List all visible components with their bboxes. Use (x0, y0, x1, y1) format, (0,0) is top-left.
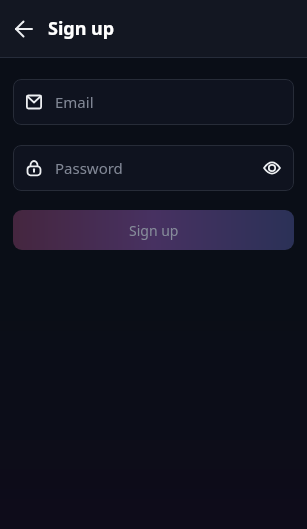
button[interactable] (0, 0, 48, 57)
staticText: Sign up (129, 221, 179, 240)
staticText: Sign up (48, 16, 115, 41)
staticText: Email (55, 92, 94, 112)
staticText: Password (55, 158, 123, 178)
button[interactable]: Email (13, 79, 294, 125)
button[interactable]: Sign up (13, 210, 294, 250)
button[interactable]: Password (13, 145, 294, 191)
button[interactable] (252, 148, 292, 188)
